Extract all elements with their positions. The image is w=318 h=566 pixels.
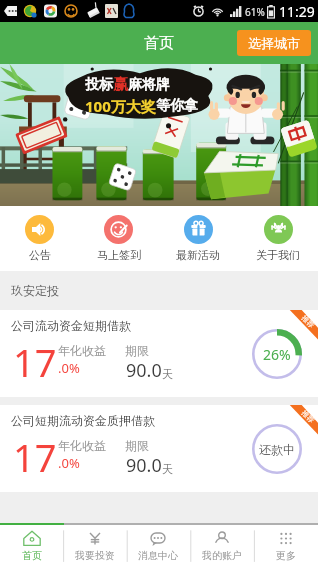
staticText: 90.0 (126, 453, 162, 478)
staticText: 马上签到 (97, 248, 141, 262)
staticText: .0% (58, 359, 80, 377)
staticText: 最新活动 (176, 248, 220, 262)
staticText: 还款中 (259, 442, 295, 457)
button[interactable]: 公告 (0, 206, 79, 271)
button[interactable]: 最新活动 (158, 206, 238, 271)
staticText: .0% (58, 454, 80, 472)
staticText: 推荐 (300, 408, 316, 425)
staticText: 期限 (125, 343, 149, 358)
staticText: 100万大奖 (85, 96, 156, 116)
staticText: 玖安定投 (11, 283, 59, 298)
button[interactable]: 公司短期流动资金质押借款 (0, 405, 318, 492)
staticText: 首页 (144, 34, 174, 53)
button[interactable]: 我的账户 (190, 525, 254, 566)
staticText: 推荐 (300, 313, 316, 330)
button[interactable]: 更多 (254, 525, 318, 566)
staticText: 我要投资 (75, 549, 115, 562)
staticText: 首页 (22, 549, 42, 562)
staticText: 消息中心 (138, 549, 178, 562)
button[interactable]: 我要投资 (63, 525, 126, 566)
staticText: 麻将牌 (128, 76, 170, 94)
staticText: 更多 (276, 549, 296, 562)
staticText: 等你拿 (156, 97, 198, 115)
button[interactable]: 选择城市 (237, 30, 311, 56)
staticText: 选择城市 (248, 35, 300, 51)
staticText: 赢 (113, 75, 128, 94)
staticText: 26% (263, 345, 291, 364)
button[interactable]: 投标 (0, 64, 318, 206)
staticText: 61% (245, 5, 265, 19)
button[interactable]: 消息中心 (126, 525, 190, 566)
staticText: 90.0 (126, 358, 162, 383)
staticText: 17 (13, 336, 57, 388)
staticText: 公司短期流动资金质押借款 (11, 413, 155, 428)
staticText: 我的账户 (202, 549, 242, 562)
button[interactable]: 关于我们 (238, 206, 318, 271)
staticText: 关于我们 (256, 248, 300, 262)
button[interactable]: 首页 (0, 525, 63, 566)
staticText: 17 (13, 431, 57, 483)
staticText: 年化收益 (58, 438, 106, 453)
staticText: 天 (162, 367, 173, 381)
staticText: 天 (162, 462, 173, 476)
staticText: 期限 (125, 438, 149, 453)
button[interactable]: 公司流动资金短期借款 (0, 310, 318, 397)
staticText: 11:29 (279, 2, 315, 21)
staticText: 公告 (29, 248, 51, 262)
staticText: 公司流动资金短期借款 (11, 318, 131, 333)
staticText: 年化收益 (58, 343, 106, 358)
button[interactable]: 马上签到 (79, 206, 158, 271)
staticText: 投标 (85, 76, 113, 94)
